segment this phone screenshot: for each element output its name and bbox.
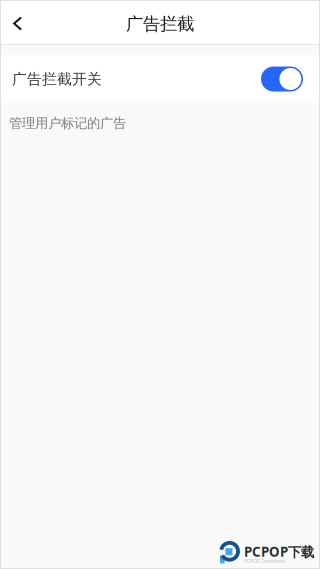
staticText: 管理用户标记的广告	[9, 115, 126, 131]
button[interactable]: Back	[0, 0, 35, 44]
staticText: 广告拦截开关	[12, 70, 102, 88]
staticText: 广告拦截	[126, 13, 194, 35]
button[interactable]: 广告拦截开关	[0, 55, 320, 103]
staticText: PCPOP Download	[244, 557, 285, 565]
staticText: PCPOP下载	[244, 543, 314, 560]
